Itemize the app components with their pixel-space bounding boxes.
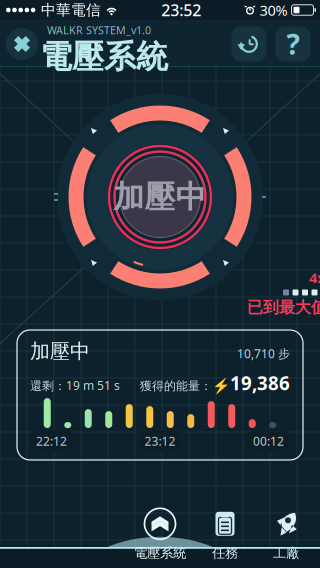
staticText: 23:52 <box>161 0 201 21</box>
staticText: 電壓系統 <box>134 545 186 561</box>
staticText: 加壓中 <box>30 339 90 364</box>
button[interactable]: 任務 <box>195 506 255 562</box>
staticText: WALKR SYSTEM_v1.0 <box>47 23 151 37</box>
button[interactable]: Help <box>271 22 315 66</box>
staticText: 已到最大值 <box>247 297 320 317</box>
staticText: 30% <box>255 0 291 20</box>
staticText: 電壓系統 <box>40 37 168 76</box>
staticText: 工廠 <box>273 545 299 561</box>
staticText: 任務 <box>212 545 238 561</box>
staticText: 還剩：19 m 51 s <box>30 377 120 393</box>
staticText: 00:12 <box>253 433 284 449</box>
staticText: 10,710 步 <box>237 346 290 361</box>
staticText: 獲得的能量： <box>140 379 212 393</box>
staticText: ⚡ <box>212 378 230 394</box>
staticText: 4x <box>309 268 320 287</box>
staticText: 23:12 <box>144 433 175 449</box>
button[interactable]: Close <box>2 22 42 66</box>
staticText: 19,386 <box>230 371 290 395</box>
staticText: 22:12 <box>36 433 67 449</box>
button[interactable]: 工廠 <box>256 506 316 562</box>
staticText: 中華電信 <box>37 1 105 19</box>
button[interactable]: History <box>227 22 271 66</box>
staticText: 加壓中 <box>113 178 206 216</box>
button[interactable]: 電壓系統 <box>125 506 195 562</box>
staticText: ? <box>286 25 299 63</box>
